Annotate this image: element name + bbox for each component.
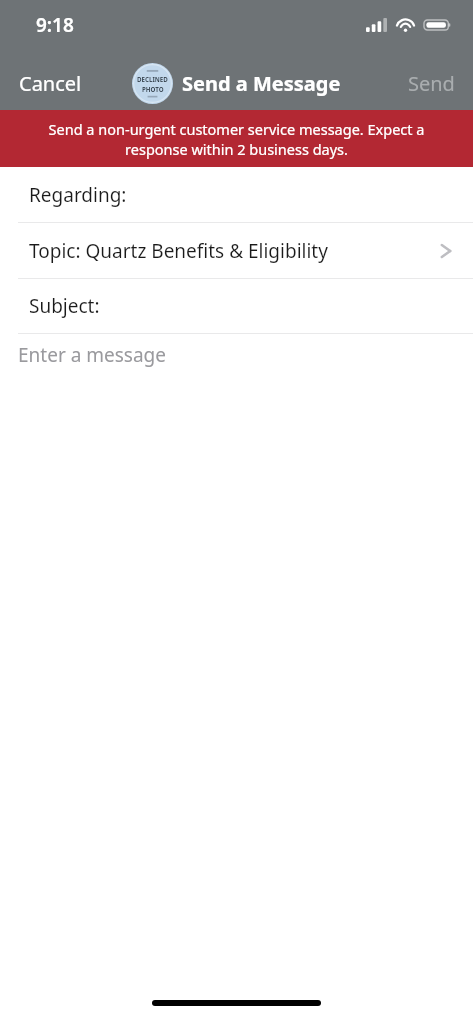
button[interactable]: Enter a message — [0, 334, 473, 994]
staticText: Send a Message — [182, 70, 341, 97]
staticText: PHOTO — [142, 85, 164, 93]
button[interactable]: Regarding: — [0, 167, 473, 222]
staticText: 9:18 — [36, 12, 74, 38]
staticText: Send a non-urgent customer service messa… — [18, 119, 455, 159]
staticText: Enter a message — [18, 342, 167, 368]
button[interactable]: Cancel — [0, 60, 101, 107]
staticText: DECLINED — [137, 75, 168, 83]
button[interactable]: Send — [390, 60, 473, 107]
staticText: Regarding: — [29, 182, 127, 208]
staticText: Send — [408, 70, 455, 97]
button[interactable]: Subject: — [0, 279, 473, 333]
staticText: Topic: Quartz Benefits & Eligibility — [29, 238, 328, 264]
button[interactable]: Topic: Quartz Benefits & Eligibility — [0, 223, 473, 278]
staticText: Subject: — [29, 293, 100, 319]
staticText: Cancel — [19, 70, 82, 97]
other: Profile photo — [132, 63, 173, 104]
